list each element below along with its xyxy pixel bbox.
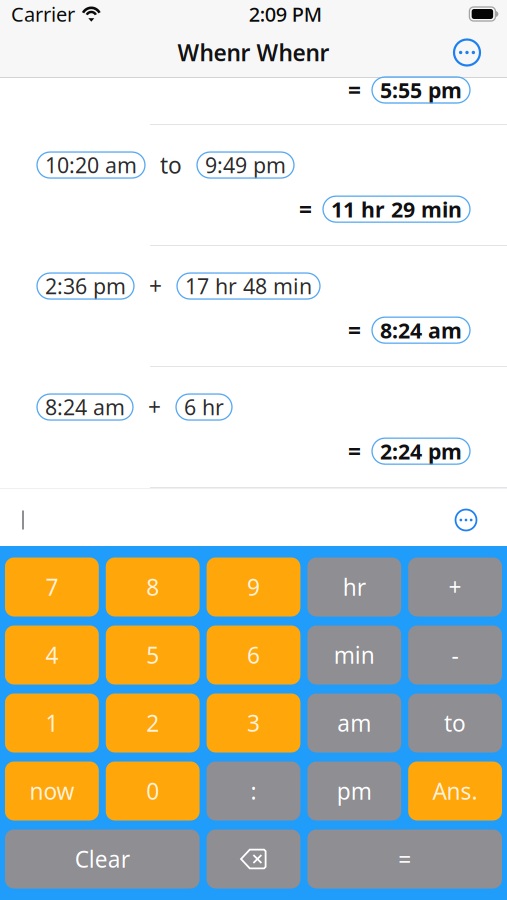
button[interactable]: + [408, 557, 502, 616]
button[interactable]: Input options [446, 500, 486, 540]
button[interactable]: = [307, 829, 502, 888]
button[interactable]: now [5, 761, 99, 820]
staticText: = [398, 844, 411, 874]
staticText: + [449, 572, 462, 602]
button[interactable]: 7 [5, 557, 99, 616]
staticText: + [148, 392, 161, 422]
button[interactable]: - [408, 625, 502, 684]
staticText: = [299, 194, 312, 224]
staticText: min [334, 640, 375, 670]
staticText: now [29, 776, 74, 806]
staticText: 5 [146, 640, 159, 670]
staticText: 10:20 am [45, 151, 137, 179]
staticText: 2:24 pm [380, 437, 462, 465]
staticText: to [160, 150, 182, 180]
button[interactable]: min [307, 625, 401, 684]
staticText: 11 hr 29 min [331, 195, 462, 223]
staticText: - [452, 640, 459, 670]
staticText: 6 [247, 640, 260, 670]
staticText: to [444, 708, 466, 738]
staticText: Carrier [11, 1, 75, 27]
staticText: pm [337, 776, 372, 806]
staticText: 2:36 pm [45, 272, 126, 300]
staticText: + [149, 271, 162, 301]
staticText: : [250, 776, 256, 806]
staticText: 9:49 pm [205, 151, 286, 179]
staticText: = [348, 315, 361, 345]
button[interactable]: 6 [207, 625, 300, 684]
button[interactable]: 3 [207, 693, 300, 752]
button[interactable]: to [408, 693, 502, 752]
staticText: 8:24 am [380, 316, 462, 344]
staticText: hr [343, 572, 366, 602]
staticText: 3 [247, 708, 260, 738]
staticText: = [348, 436, 361, 466]
staticText: 5:55 pm [380, 76, 462, 104]
staticText: 4 [45, 640, 58, 670]
staticText: = [348, 75, 361, 105]
button[interactable]: 0 [106, 761, 200, 820]
staticText: 6 hr [184, 393, 224, 421]
button[interactable]: More options [445, 30, 489, 74]
staticText: 1 [45, 708, 58, 738]
button[interactable]: am [307, 693, 401, 752]
button[interactable]: 8 [106, 557, 200, 616]
staticText: 2:09 PM [249, 1, 322, 27]
button[interactable]: Delete [207, 829, 300, 888]
staticText: 8 [146, 572, 159, 602]
button[interactable]: 2 [106, 693, 200, 752]
staticText: Clear [75, 844, 130, 874]
button[interactable]: hr [307, 557, 401, 616]
button[interactable]: 9 [207, 557, 300, 616]
staticText: 7 [45, 572, 58, 602]
staticText: 8:24 am [45, 393, 125, 421]
button[interactable]: 1 [5, 693, 99, 752]
button[interactable]: 5 [106, 625, 200, 684]
button[interactable]: Ans. [408, 761, 502, 820]
button[interactable]: Clear [5, 829, 200, 888]
staticText: 17 hr 48 min [185, 272, 312, 300]
staticText: Ans. [433, 776, 478, 806]
staticText: am [337, 708, 371, 738]
staticText: Whenr Whenr [177, 37, 329, 67]
staticText: 9 [247, 572, 260, 602]
button[interactable]: : [207, 761, 300, 820]
button[interactable]: pm [307, 761, 401, 820]
staticText: 2 [146, 708, 159, 738]
staticText: 0 [146, 776, 159, 806]
button[interactable]: 4 [5, 625, 99, 684]
